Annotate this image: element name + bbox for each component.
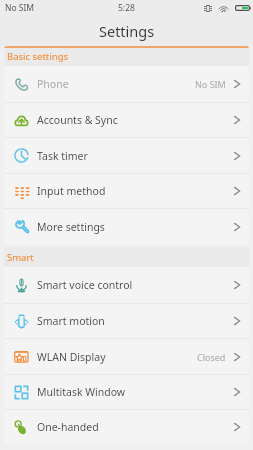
button[interactable]: Accounts & Sync (4, 103, 249, 137)
button[interactable]: One-handed (4, 410, 249, 444)
button[interactable]: WLAN Display (4, 339, 249, 374)
staticText: 5:28 (118, 2, 135, 14)
staticText: Smart (7, 251, 34, 264)
staticText: Multitask Window (37, 385, 126, 399)
staticText: Task timer (37, 149, 88, 163)
staticText: WLAN Display (37, 350, 106, 364)
staticText: Smart voice control (37, 278, 133, 292)
button[interactable]: More settings (4, 209, 249, 244)
staticText: Closed (197, 351, 226, 363)
button[interactable]: Multitask Window (4, 375, 249, 409)
staticText: No SIM (5, 2, 35, 14)
button[interactable]: Input method (4, 174, 249, 208)
staticText: Phone (37, 77, 69, 91)
button[interactable]: Smart voice control (4, 267, 249, 303)
button[interactable]: Phone (4, 66, 249, 102)
staticText: Smart motion (37, 314, 105, 328)
staticText: More settings (37, 220, 105, 234)
staticText: Accounts & Sync (37, 113, 118, 127)
staticText: Input method (37, 184, 106, 198)
staticText: No SIM (195, 78, 226, 90)
button[interactable]: Task timer (4, 138, 249, 173)
staticText: Settings (99, 21, 155, 41)
staticText: One-handed (37, 420, 99, 434)
staticText: Basic settings (7, 50, 69, 63)
button[interactable]: Smart motion (4, 304, 249, 338)
